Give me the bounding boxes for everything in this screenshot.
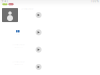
button[interactable]: caption	[0, 24, 100, 41]
button[interactable]: Lorem ipsum dolor	[0, 58, 100, 75]
button[interactable]: Lorem ipsum dolor	[0, 41, 100, 58]
staticText: 9:41	[1, 0, 8, 3]
staticText: 100%	[90, 0, 98, 3]
button[interactable]: Available	[2, 3, 7, 5]
staticText: Available	[2, 2, 7, 6]
button[interactable]: Busy	[8, 3, 14, 5]
staticText: Busy	[9, 3, 13, 5]
button[interactable]: Lorem ipsum dolor	[0, 6, 100, 24]
